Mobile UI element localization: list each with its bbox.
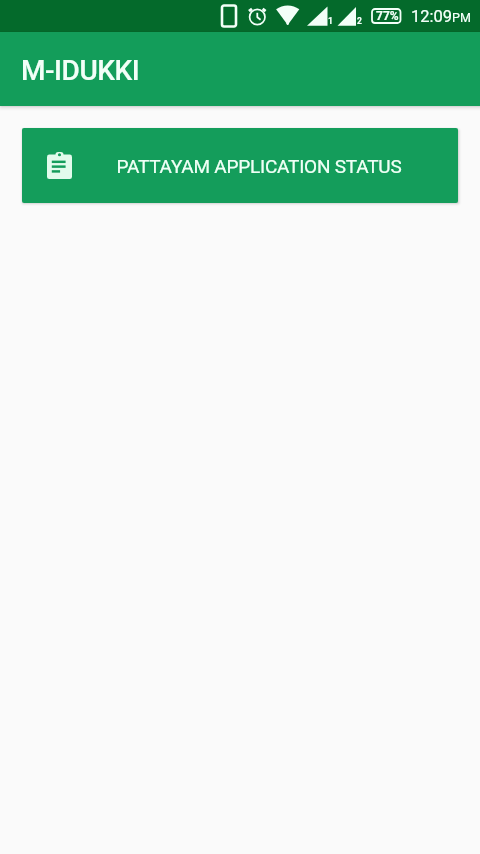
button[interactable]: Pattayam application status [22,128,458,203]
staticText: PM [452,10,471,25]
staticText: 1 [328,16,333,26]
staticText: PATTAYAM APPLICATION STATUS [116,155,402,177]
staticText: 2 [357,16,362,26]
staticText: 12:09 [411,7,453,26]
staticText: M-IDUKKI [21,54,140,87]
staticText: 77% [376,9,399,23]
